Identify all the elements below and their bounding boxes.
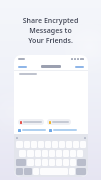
button[interactable]: Key [16, 159, 26, 166]
button[interactable]: Attachment [18, 119, 44, 125]
staticText: Share Encrypted Messages to Your Friends… [6, 16, 95, 46]
button[interactable]: Attachment [47, 119, 71, 125]
button[interactable]: Key [24, 168, 32, 175]
button[interactable]: Key [16, 168, 23, 175]
button[interactable]: Key [76, 168, 86, 175]
button[interactable]: Link [18, 128, 46, 132]
button[interactable]: Key [77, 159, 86, 166]
button[interactable]: Link [49, 128, 77, 132]
button[interactable] [18, 66, 27, 68]
button[interactable] [75, 66, 84, 68]
